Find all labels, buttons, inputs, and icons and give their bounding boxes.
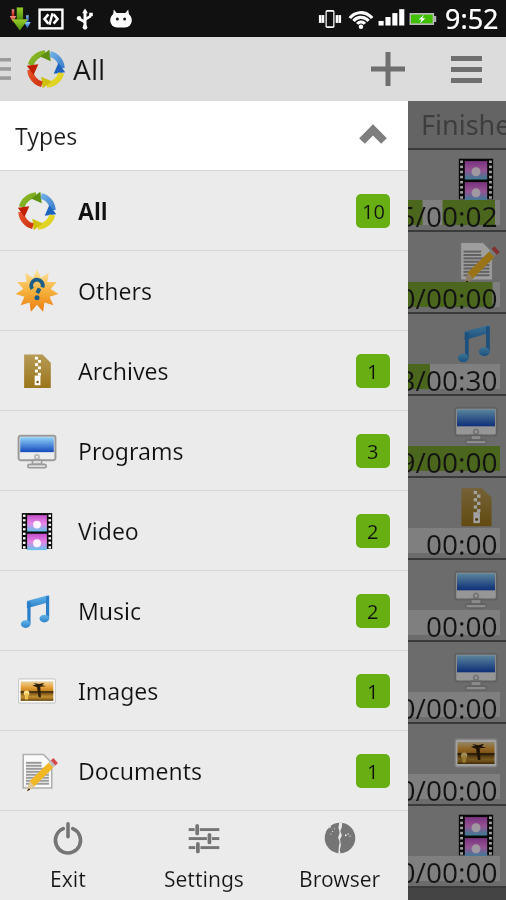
staticText: 00:09/00:00 (344, 443, 498, 474)
staticText: Images (78, 675, 159, 706)
staticText: Music (78, 595, 142, 626)
button[interactable]: Music (0, 571, 408, 650)
staticText: 00:00/00:00 (344, 689, 498, 720)
button[interactable]: Add download (358, 37, 418, 101)
staticText: 1 (367, 358, 379, 385)
button[interactable]: Programs (0, 411, 408, 490)
staticText: 2 (367, 518, 379, 545)
staticText: 3 (367, 438, 379, 465)
staticText: 9:52 (445, 0, 499, 37)
staticText: Browser (299, 865, 381, 894)
staticText: 1 (367, 758, 379, 785)
staticText: 10 (362, 198, 385, 225)
staticText: All (78, 195, 108, 226)
staticText: 1 (367, 678, 379, 705)
button[interactable]: Open navigation drawer (0, 37, 18, 101)
staticText: Programs (78, 435, 184, 466)
staticText: 2 (367, 598, 379, 625)
staticText: 00:05/00:02 (344, 197, 498, 228)
staticText: All (73, 50, 106, 88)
button[interactable]: Settings (136, 811, 272, 900)
button[interactable]: Images (0, 651, 408, 730)
staticText: 00:00 (426, 525, 498, 556)
button[interactable]: Video (0, 491, 408, 570)
button[interactable]: All (0, 171, 408, 250)
button[interactable]: Archives (0, 331, 408, 410)
staticText: Video (78, 515, 139, 546)
button[interactable]: Documents (0, 731, 408, 810)
staticText: 00:00/00:00 (344, 853, 498, 884)
staticText: Exit (50, 865, 86, 894)
staticText: Types (15, 120, 78, 151)
button[interactable]: Exit (0, 811, 136, 900)
staticText: 00:00/00:00 (344, 771, 498, 802)
staticText: 00:10/00:00 (344, 279, 498, 310)
button[interactable]: Browser (272, 811, 408, 900)
staticText: 00:13/00:30 (344, 361, 498, 392)
staticText: Documents (78, 755, 202, 786)
staticText: 00:00 (426, 607, 498, 638)
button[interactable]: Others (0, 251, 408, 330)
button[interactable]: Types (0, 101, 408, 170)
staticText: Others (78, 275, 152, 306)
staticText: Archives (78, 355, 169, 386)
staticText: Settings (164, 865, 244, 894)
staticText: Finished (421, 106, 506, 143)
button[interactable]: Menu (431, 37, 501, 101)
